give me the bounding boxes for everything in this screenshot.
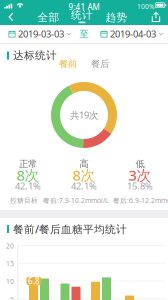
button[interactable]: 2019-03-03 [6, 25, 74, 43]
staticText: 42.1% [15, 180, 41, 192]
button[interactable]: 餐前 [58, 58, 78, 70]
staticText: 15 [6, 259, 14, 268]
staticText: 6.8 [28, 276, 40, 286]
staticText: 42.1% [71, 180, 97, 192]
staticText: 2019-03-03 [18, 28, 64, 40]
staticText: 至 [79, 28, 88, 40]
button[interactable]: 趋势 [101, 9, 131, 25]
staticText: 正常 [19, 158, 37, 170]
staticText: 趋势 [105, 11, 127, 24]
staticText: 餐前 [59, 58, 77, 70]
staticText: 控糖目标 [10, 196, 38, 204]
staticText: 全部 [37, 11, 59, 24]
button[interactable]: 统计 [67, 9, 97, 25]
button[interactable]: 2019-04-03 [98, 25, 166, 43]
staticText: 8次 [72, 165, 95, 185]
staticText: 餐后 [91, 58, 109, 70]
button[interactable]: Back [1, 9, 21, 25]
staticText: 8次 [16, 165, 39, 185]
button[interactable]: 全部 [33, 9, 63, 25]
button[interactable]: 餐后 [90, 58, 110, 70]
staticText: 餐前/餐后血糖平均统计 [13, 222, 127, 236]
staticText: 9:41 AM [68, 1, 99, 12]
staticText: 3次 [128, 165, 151, 185]
staticText: 2019-04-03 [110, 28, 156, 40]
staticText: 统计 [71, 8, 93, 21]
staticText: 20 [6, 241, 14, 250]
staticText: 共19次 [70, 109, 98, 121]
staticText: 餐前:7.9-10.2mmol/L [43, 196, 108, 205]
staticText: 达标统计 [13, 49, 57, 62]
staticText: 餐后:6.9-12.2mmol/L [113, 196, 168, 205]
staticText: 高 [79, 158, 88, 170]
button[interactable]: Share [146, 9, 166, 25]
staticText: 低 [135, 158, 144, 170]
staticText: 5 [10, 295, 14, 300]
staticText: 10 [6, 277, 14, 286]
staticText: 100% [137, 2, 155, 11]
staticText: 15.8% [127, 180, 153, 192]
